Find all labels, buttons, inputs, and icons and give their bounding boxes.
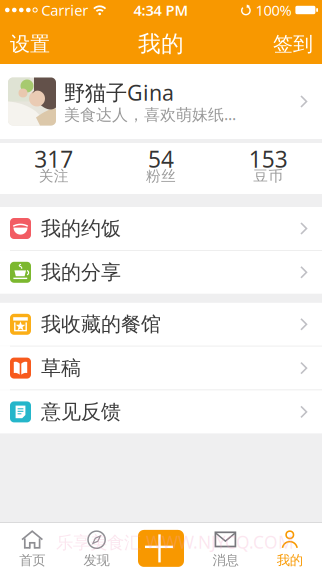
button[interactable]: 我的分享 — [0, 251, 322, 294]
staticText: 豆币 — [253, 167, 283, 185]
button[interactable]: 我收藏的餐馆 — [0, 303, 322, 346]
button[interactable]: 54 — [107, 148, 215, 189]
staticText: 美食达人，喜欢萌妹纸... — [64, 103, 236, 125]
button[interactable]: 签到 — [273, 30, 322, 54]
staticText: 我的分享 — [41, 260, 121, 285]
staticText: 153 — [249, 144, 288, 174]
staticText: 野猫子Gina — [64, 78, 174, 106]
button[interactable]: 消息 — [193, 527, 258, 566]
staticText: 我收藏的餐馆 — [41, 312, 161, 337]
button[interactable]: 发布 — [138, 530, 184, 567]
staticText: 我的 — [277, 552, 303, 569]
staticText: 签到 — [273, 32, 313, 56]
staticText: 54 — [148, 144, 174, 174]
button[interactable]: 野猫子Gina — [0, 64, 322, 139]
staticText: 粉丝 — [146, 167, 176, 185]
staticText: 消息 — [212, 552, 238, 569]
staticText: 关注 — [39, 167, 69, 185]
staticText: 设置 — [10, 32, 50, 56]
button[interactable]: 317 — [0, 148, 107, 189]
button[interactable]: 我的约饭 — [0, 207, 322, 250]
button[interactable]: 设置 — [0, 30, 50, 54]
button[interactable]: 草稿 — [0, 347, 322, 390]
button[interactable]: 意见反馈 — [0, 390, 322, 433]
staticText: 草稿 — [41, 356, 81, 380]
button[interactable]: 首页 — [0, 527, 64, 566]
staticText: 首页 — [19, 552, 45, 569]
staticText: 乐享美食汇 WWW.NJYCQ.COM — [56, 530, 294, 553]
staticText: 我的约饭 — [41, 216, 121, 241]
staticText: 意见反馈 — [41, 400, 121, 424]
button[interactable]: 153 — [215, 148, 322, 189]
button[interactable]: 发现 — [64, 527, 129, 566]
staticText: 100% — [255, 0, 291, 20]
staticText: 4:34 PM — [133, 0, 188, 20]
staticText: 317 — [34, 144, 73, 174]
staticText: 发现 — [84, 552, 110, 569]
staticText: 我的 — [138, 30, 184, 58]
button[interactable]: 我的 — [258, 527, 322, 566]
staticText: Carrier — [41, 0, 88, 20]
